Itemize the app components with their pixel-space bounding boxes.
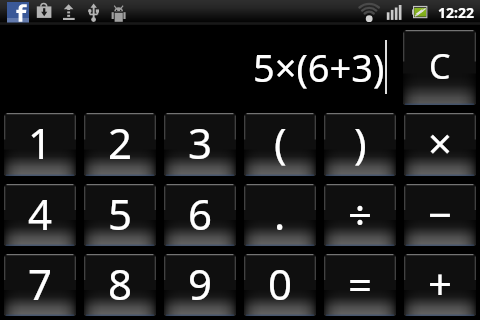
staticText: =	[348, 255, 373, 312]
staticText: ×	[428, 114, 453, 171]
button[interactable]: (	[244, 113, 316, 176]
staticText: )	[354, 114, 367, 171]
staticText: 0	[268, 255, 293, 312]
button[interactable]: 7	[4, 254, 76, 316]
staticText: +	[428, 255, 453, 312]
button[interactable]: 4	[4, 184, 76, 246]
staticText: 12:22	[438, 3, 474, 22]
staticText: (	[274, 114, 287, 171]
staticText: 1	[28, 114, 53, 171]
button[interactable]: =	[324, 254, 396, 316]
staticText: −	[428, 185, 453, 242]
button[interactable]: 1	[4, 113, 76, 176]
button[interactable]: 9	[164, 254, 236, 316]
staticText: 5×(6+3)	[253, 41, 385, 93]
button[interactable]: 0	[244, 254, 316, 316]
button[interactable]: .	[244, 184, 316, 246]
button[interactable]: 8	[84, 254, 156, 316]
button[interactable]: 5	[84, 184, 156, 246]
staticText: 6	[188, 185, 213, 242]
staticText: 4	[28, 185, 53, 242]
staticText: 5	[108, 185, 133, 242]
staticText: 7	[28, 255, 53, 312]
staticText: 3	[188, 114, 213, 171]
staticText: 8	[108, 255, 133, 312]
button[interactable]: C	[403, 30, 476, 105]
button[interactable]: 2	[84, 113, 156, 176]
staticText: 9	[188, 255, 213, 312]
button[interactable]: )	[324, 113, 396, 176]
staticText: 2	[108, 114, 133, 171]
staticText: ÷	[348, 185, 373, 242]
button[interactable]: +	[404, 254, 476, 316]
button[interactable]: 3	[164, 113, 236, 176]
button[interactable]: 6	[164, 184, 236, 246]
button[interactable]: −	[404, 184, 476, 246]
staticText: .	[274, 185, 286, 242]
button[interactable]: ×	[404, 113, 476, 176]
button[interactable]: ÷	[324, 184, 396, 246]
staticText: C	[429, 43, 451, 89]
